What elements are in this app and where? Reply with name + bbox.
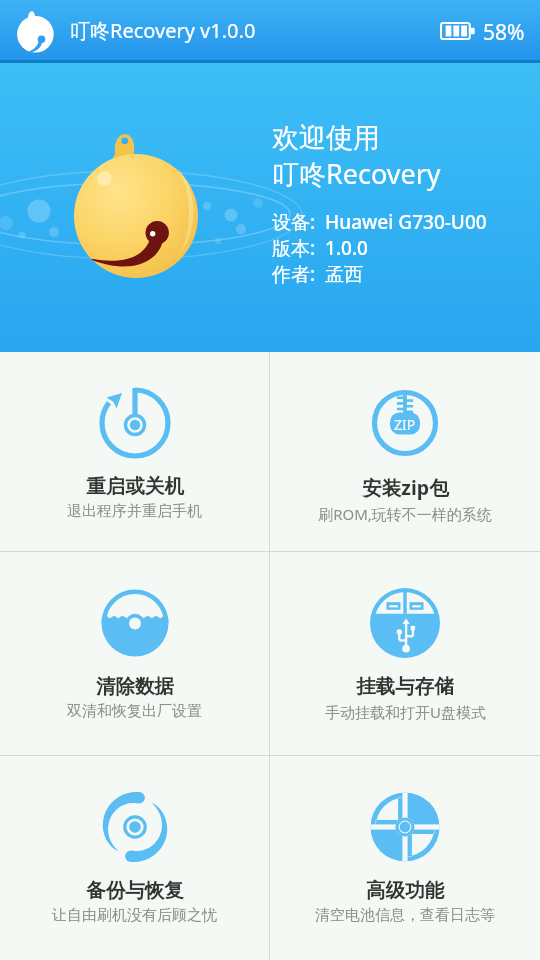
staticText: 版本: 1.0.0 xyxy=(272,235,368,261)
staticText: 叮咚Recovery xyxy=(272,155,441,192)
button[interactable]: 挂载与存储 xyxy=(270,552,540,755)
staticText: 双清和恢复出厂设置 xyxy=(67,702,202,721)
staticText: 高级功能 xyxy=(366,878,444,903)
button[interactable]: 清除数据 xyxy=(0,552,269,755)
staticText: 清空电池信息，查看日志等 xyxy=(315,906,495,925)
staticText: 退出程序并重启手机 xyxy=(67,502,202,521)
staticText: 挂载与存储 xyxy=(356,674,454,699)
button[interactable]: 备份与恢复 xyxy=(0,756,269,960)
staticText: 重启或关机 xyxy=(86,474,184,499)
staticText: 手动挂载和打开U盘模式 xyxy=(325,702,486,722)
staticText: 让自由刷机没有后顾之忧 xyxy=(52,906,217,925)
button[interactable]: 重启或关机 xyxy=(0,352,269,551)
staticText: 欢迎使用 xyxy=(272,121,380,155)
button[interactable]: 高级功能 xyxy=(270,756,540,960)
staticText: 清除数据 xyxy=(96,674,174,699)
button[interactable]: ZIP xyxy=(270,352,540,551)
staticText: 安装zip包 xyxy=(362,474,449,501)
staticText: 叮咚Recovery v1.0.0 xyxy=(70,17,256,44)
staticText: 刷ROM,玩转不一样的系统 xyxy=(318,504,492,524)
staticText: 作者: 孟西 xyxy=(272,261,364,287)
staticText: ZIP xyxy=(394,415,416,434)
staticText: 设备: Huawei G730-U00 xyxy=(272,209,487,235)
staticText: 备份与恢复 xyxy=(86,878,184,903)
staticText: 58% xyxy=(483,18,525,47)
